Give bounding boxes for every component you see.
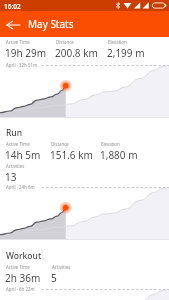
staticText: Elevation xyxy=(101,141,120,147)
staticText: Activities xyxy=(52,264,71,270)
staticText: Activities xyxy=(6,163,25,169)
staticText: Active Time xyxy=(6,39,30,45)
staticText: Active Time xyxy=(6,264,30,270)
staticText: 13 xyxy=(5,170,17,184)
staticText: Distance xyxy=(51,141,69,147)
staticText: 151.6 km xyxy=(50,148,93,162)
staticText: Active Time xyxy=(6,141,30,147)
staticText: May Stats xyxy=(28,17,74,31)
staticText: Run xyxy=(6,127,23,139)
staticText: 2h 36m xyxy=(5,271,41,285)
staticText: 14h 5m xyxy=(5,148,41,162)
staticText: Elevation xyxy=(108,39,127,45)
staticText: 200.8 km xyxy=(55,46,98,60)
staticText: 5 xyxy=(51,271,57,285)
staticText: 1,880 m xyxy=(100,148,138,162)
staticText: Distance xyxy=(56,39,74,45)
staticText: April · 24h 6m xyxy=(6,184,35,190)
staticText: 16:02 xyxy=(4,2,21,11)
staticText: Workout xyxy=(6,250,42,262)
staticText: 19h 29m xyxy=(5,46,47,60)
staticText: April · 32h 51m xyxy=(6,62,38,68)
button[interactable]: Back xyxy=(1,16,26,33)
staticText: April · 6h 22m xyxy=(6,286,35,292)
staticText: 2,199 m xyxy=(107,46,145,60)
